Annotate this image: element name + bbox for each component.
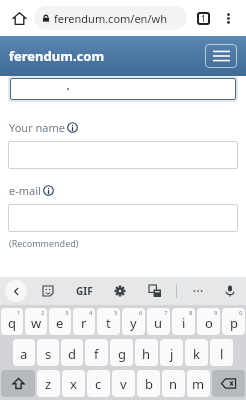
staticText: j [170,345,174,363]
button[interactable]: k [185,339,208,366]
staticText: 2 [41,309,45,317]
button[interactable]: GIF [73,284,96,298]
staticText: b [145,375,153,393]
button[interactable] [10,78,236,100]
button[interactable]: i [172,308,195,335]
staticText: f [94,345,99,363]
staticText: 7 [164,309,168,317]
button[interactable]: e [49,308,71,335]
staticText: 3 [65,309,69,317]
button[interactable]: j [160,339,183,366]
button[interactable]: h [135,339,158,366]
staticText: 9 [214,309,218,317]
staticText: l [220,345,224,363]
button[interactable]: t [97,308,120,335]
staticText: a [20,345,28,363]
button[interactable]: q [1,308,23,335]
button[interactable]: More information [42,184,55,197]
staticText: 0 [239,309,243,317]
button[interactable]: Home [6,5,32,31]
staticText: s [45,345,52,363]
staticText: z [45,375,52,393]
staticText: m [192,375,205,393]
button[interactable]: w [25,308,47,335]
staticText: k [193,345,200,363]
button[interactable]: Stickers [37,280,59,302]
staticText: 1 [201,13,206,24]
staticText: p [230,314,238,332]
button[interactable]: v [112,370,135,397]
staticText: e [56,314,64,332]
staticText: n [169,375,178,393]
button[interactable]: Shift [1,370,35,397]
button[interactable]: c [87,370,110,397]
button[interactable] [8,204,238,232]
staticText: 8 [189,309,193,317]
button[interactable]: l [210,339,233,366]
staticText: v [120,375,127,393]
staticText: r [81,314,87,332]
button[interactable]: Translate [144,280,166,302]
button[interactable]: g [110,339,133,366]
button[interactable]: y [122,308,145,335]
staticText: t [106,314,111,332]
button[interactable]: z [37,370,60,397]
button[interactable]: Backspace [212,370,245,397]
staticText: 1 [17,309,21,317]
button[interactable]: u [147,308,170,335]
staticText: y [130,314,137,332]
button[interactable]: f [85,339,108,366]
button[interactable]: ferendum.com/en/wh [34,6,187,30]
button[interactable]: More options [216,6,240,30]
button[interactable]: a [13,339,35,366]
staticText: d [68,345,76,363]
staticText: x [70,375,77,393]
button[interactable]: Menu [205,44,237,68]
staticText: u [154,314,163,332]
staticText: w [31,314,42,332]
staticText: ferendum.com/en/wh [54,11,167,26]
staticText: ferendum.com [9,47,105,65]
button[interactable]: Settings [109,280,131,302]
staticText: i [182,314,186,332]
staticText: c [95,375,102,393]
staticText: (Recommended) [9,237,79,249]
staticText: o [205,314,213,332]
staticText: q [8,314,16,332]
button[interactable]: More [187,280,209,302]
button[interactable]: Tabs, 1 open [190,5,216,31]
staticText: e-mail [9,183,41,198]
button[interactable]: Voice input [219,280,241,302]
staticText: h [142,345,151,363]
staticText: g [118,345,126,363]
button[interactable]: o [197,308,220,335]
staticText: Your name [9,120,65,135]
button[interactable]: p [222,308,245,335]
staticText: 6 [139,309,143,317]
button[interactable] [8,141,238,169]
button[interactable]: More information [66,121,79,134]
button[interactable]: r [73,308,95,335]
button[interactable]: b [137,370,160,397]
staticText: 5 [114,309,118,317]
button[interactable]: s [37,339,59,366]
staticText: 4 [89,309,93,317]
button[interactable]: n [162,370,185,397]
button[interactable]: d [61,339,83,366]
button[interactable]: x [62,370,85,397]
button[interactable]: Back [5,280,27,302]
staticText: GIF [76,284,93,298]
button[interactable]: m [187,370,210,397]
